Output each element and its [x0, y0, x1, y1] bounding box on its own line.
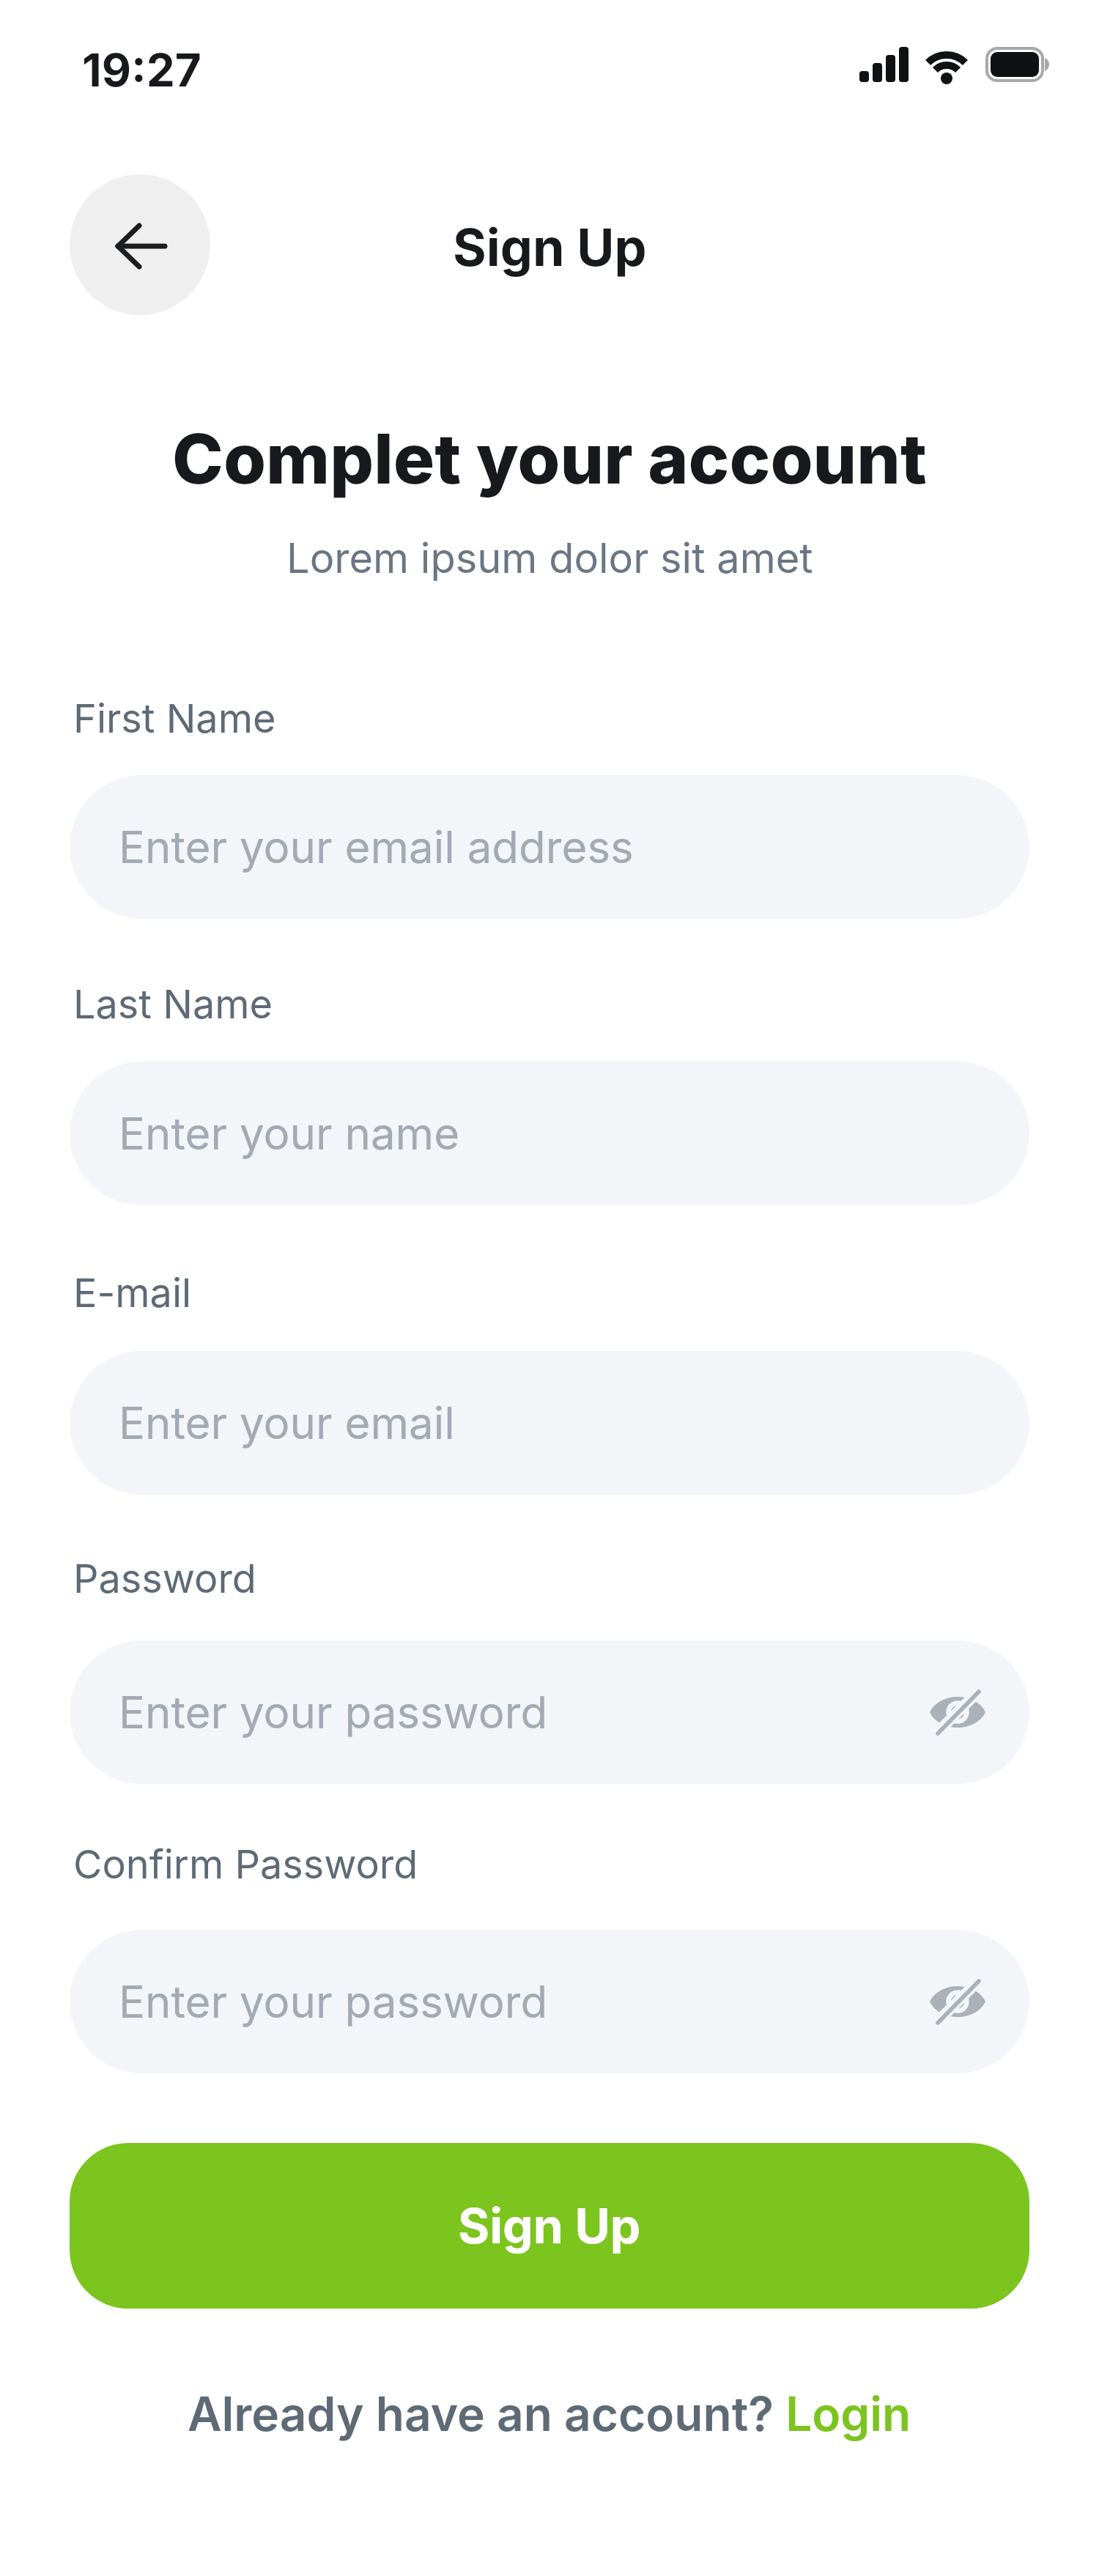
button[interactable]: Enter your email address: [70, 775, 1029, 919]
staticText: Lorem ipsum dolor sit amet: [286, 533, 813, 583]
staticText: Enter your password: [119, 1975, 548, 2029]
staticText: Enter your name: [119, 1107, 460, 1161]
staticText: First Name: [73, 695, 276, 742]
button[interactable]: Enter your password: [70, 1640, 1029, 1784]
staticText: Sign Up: [458, 2196, 641, 2255]
button[interactable]: Already have an account? Login: [188, 2386, 911, 2442]
staticText: 19:27: [82, 42, 201, 97]
button[interactable]: [70, 174, 210, 315]
staticText: E-mail: [73, 1269, 192, 1317]
staticText: Sign Up: [453, 216, 647, 278]
staticText: Enter your password: [119, 1686, 548, 1739]
button[interactable]: Enter your password: [70, 1930, 1029, 2073]
staticText: Complet your account: [172, 417, 927, 500]
staticText: Confirm Password: [73, 1840, 418, 1888]
button[interactable]: Enter your email: [70, 1351, 1029, 1495]
button[interactable]: Sign Up: [70, 2143, 1029, 2309]
button[interactable]: Enter your name: [70, 1062, 1029, 1205]
staticText: Last Name: [73, 980, 273, 1028]
staticText: Enter your email: [119, 1396, 455, 1450]
staticText: Password: [73, 1555, 256, 1602]
staticText: Enter your email address: [119, 821, 634, 874]
